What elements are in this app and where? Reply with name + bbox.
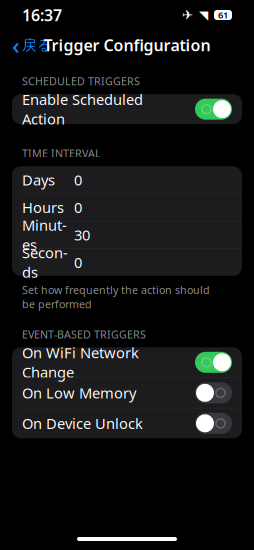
- staticText: Set how frequently the action should be …: [22, 283, 210, 311]
- button[interactable]: On WiFi Network Change: [12, 347, 242, 377]
- staticText: 61: [218, 9, 228, 21]
- staticText: 0: [74, 170, 82, 190]
- button[interactable]: Hours: [12, 194, 242, 221]
- staticText: Enable Scheduled Action: [22, 90, 143, 129]
- button[interactable]: Enable Scheduled Action: [12, 94, 242, 124]
- staticText: Trigger Configuration: [43, 34, 210, 56]
- staticText: 16:37: [22, 4, 62, 26]
- staticText: On Device Unlock: [22, 414, 143, 433]
- staticText: ✈: [182, 7, 193, 22]
- staticText: TIME INTERVAL: [22, 146, 101, 160]
- staticText: Days: [22, 170, 55, 190]
- staticText: ◥: [199, 8, 208, 22]
- staticText: Seconds: [22, 243, 68, 282]
- button[interactable]: Seconds: [12, 249, 242, 276]
- staticText: Hours: [22, 198, 64, 217]
- button[interactable]: On Low Memory: [12, 378, 242, 408]
- staticText: 30: [74, 225, 90, 245]
- button[interactable]: On Device Unlock: [12, 408, 242, 438]
- staticText: SCHEDULED TRIGGERS: [22, 74, 140, 88]
- button[interactable]: Minutes: [12, 221, 242, 248]
- staticText: 0: [74, 198, 82, 217]
- button[interactable]: ‹: [4, 31, 60, 59]
- staticText: 戻る: [22, 36, 52, 54]
- staticText: On WiFi Network Change: [22, 343, 139, 382]
- staticText: 0: [74, 253, 82, 272]
- staticText: On Low Memory: [22, 383, 136, 403]
- staticText: ‹: [12, 29, 20, 61]
- staticText: Minutes: [22, 215, 67, 254]
- button[interactable]: Days: [12, 166, 242, 193]
- staticText: EVENT-BASED TRIGGERS: [22, 327, 146, 341]
